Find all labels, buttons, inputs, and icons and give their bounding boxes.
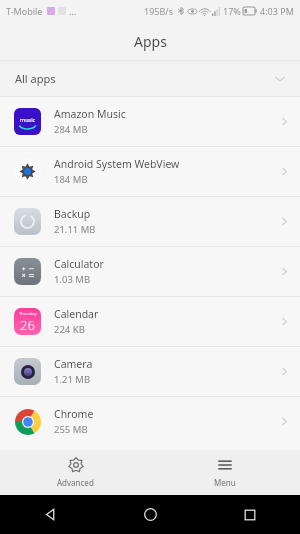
staticText: music [20,116,36,123]
staticText: ... [69,5,77,17]
staticText: T-Mobile [6,5,43,17]
staticText: Calendar [54,307,99,321]
staticText: 1.03 MB [54,273,91,286]
staticText: Thursday [19,311,37,316]
staticText: 224 KB [54,323,85,336]
staticText: 255 MB [54,423,88,436]
staticText: Android System WebView [54,157,180,171]
staticText: 26 [20,316,35,334]
staticText: Advanced [57,477,94,488]
staticText: Backup [54,207,91,221]
staticText: 17% [223,5,241,17]
staticText: 21.11 MB [54,223,96,236]
staticText: Calculator [54,257,104,271]
button[interactable]: Android System WebView [0,147,300,196]
staticText: 184 MB [54,173,88,186]
button[interactable]: Backup [0,197,300,246]
button[interactable]: Advanced [0,450,150,495]
staticText: All apps [15,71,56,86]
staticText: Amazon Music [54,107,126,121]
button[interactable]: Chrome [0,397,300,446]
button[interactable]: Recent apps [200,495,300,534]
button[interactable]: Thursday [0,297,300,346]
button[interactable]: Home [100,495,200,534]
staticText: Menu [214,477,236,488]
staticText: 1.21 MB [54,373,91,386]
staticText: 284 MB [54,123,88,136]
button[interactable]: Back [0,495,100,534]
button[interactable]: Menu [150,450,300,495]
staticText: Apps [134,32,167,51]
button[interactable]: All apps [0,61,300,96]
staticText: Camera [54,357,93,371]
button[interactable]: Calculator [0,247,300,296]
staticText: Chrome [54,407,94,421]
button[interactable]: Camera [0,347,300,396]
staticText: 195B/s [144,5,173,17]
staticText: 4:03 PM [260,5,294,17]
button[interactable]: music [0,97,300,146]
